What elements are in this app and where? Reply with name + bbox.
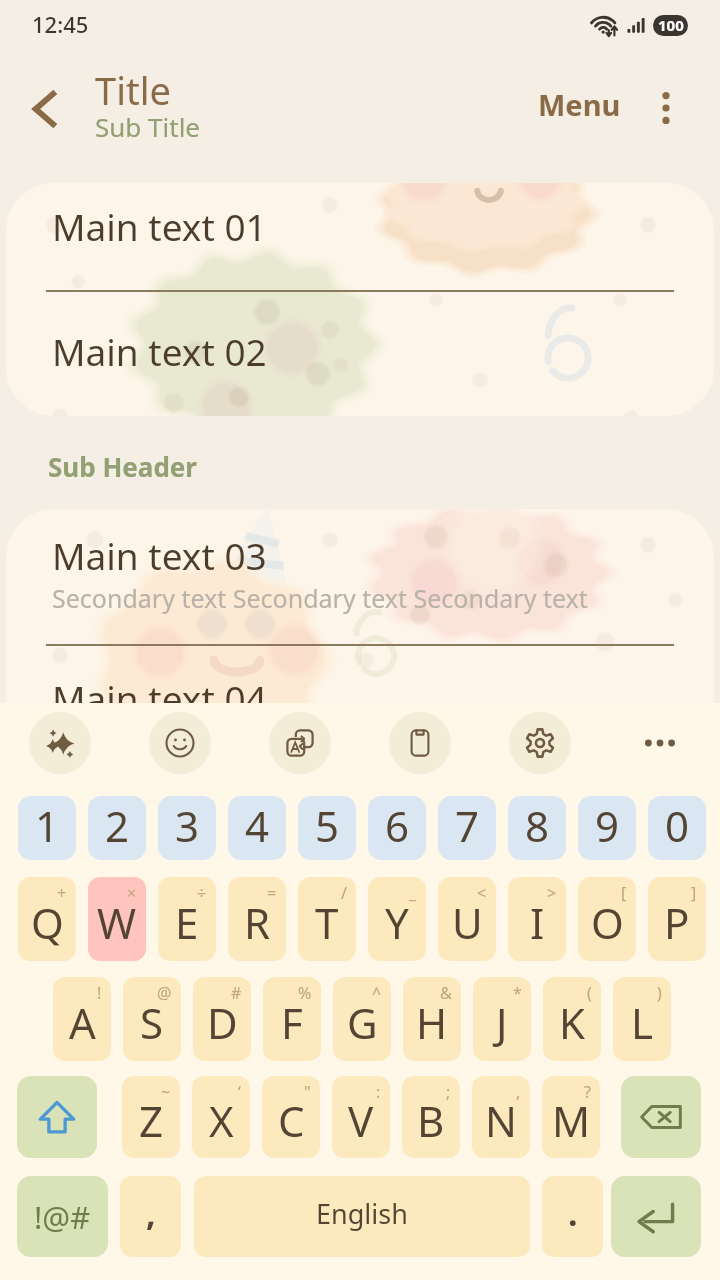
staticText: ( — [587, 982, 592, 1004]
button[interactable]: E — [158, 877, 216, 961]
staticText: Menu — [538, 85, 621, 124]
staticText: 4 — [245, 797, 270, 854]
button[interactable]: . — [542, 1176, 603, 1257]
button[interactable]: 4 — [228, 796, 286, 860]
staticText: English — [316, 1195, 408, 1232]
button[interactable]: Z — [122, 1076, 180, 1158]
staticText: E — [175, 894, 199, 951]
button[interactable]: S — [123, 977, 181, 1061]
button[interactable]: 2 — [88, 796, 146, 860]
staticText: Title — [95, 64, 171, 116]
staticText: [ — [621, 882, 627, 904]
staticText: ^ — [372, 982, 382, 1004]
button[interactable]: Translate — [269, 712, 331, 774]
staticText: 100 — [658, 15, 684, 35]
button[interactable]: Settings — [509, 712, 571, 774]
button[interactable]: D — [193, 977, 251, 1061]
button[interactable]: AI suggestions — [29, 712, 91, 774]
button[interactable]: 1 — [18, 796, 76, 860]
button[interactable]: More options — [638, 80, 694, 136]
staticText: T — [315, 894, 339, 951]
staticText: C — [278, 1092, 305, 1149]
staticText: 7 — [455, 797, 480, 854]
staticText: Main text 01 — [52, 201, 267, 251]
button[interactable]: 0 — [648, 796, 706, 860]
button[interactable]: H — [403, 977, 461, 1061]
button[interactable]: 9 — [578, 796, 636, 860]
button[interactable]: Main text 03 — [6, 509, 714, 644]
staticText: & — [440, 982, 452, 1004]
button[interactable]: M — [542, 1076, 600, 1158]
staticText: A — [69, 994, 96, 1051]
button[interactable]: O — [578, 877, 636, 961]
button[interactable]: W — [88, 877, 146, 961]
button[interactable]: Menu — [522, 73, 637, 136]
staticText: 6 — [385, 797, 410, 854]
staticText: # — [231, 982, 242, 1004]
button[interactable]: R — [228, 877, 286, 961]
button[interactable]: Backspace — [621, 1076, 701, 1158]
button[interactable]: P — [648, 877, 706, 961]
button[interactable]: Enter — [611, 1176, 701, 1257]
button[interactable]: 3 — [158, 796, 216, 860]
staticText: G — [347, 994, 378, 1051]
button[interactable]: T — [298, 877, 356, 961]
button[interactable]: 8 — [508, 796, 566, 860]
button[interactable]: Y — [368, 877, 426, 961]
button[interactable]: B — [402, 1076, 460, 1158]
staticText: Q — [31, 894, 64, 951]
button[interactable]: English — [194, 1176, 530, 1257]
button[interactable]: J — [473, 977, 531, 1061]
button[interactable]: Shift — [17, 1076, 97, 1158]
button[interactable]: 6 — [368, 796, 426, 860]
button[interactable]: More — [629, 712, 691, 774]
staticText: Y — [385, 894, 409, 951]
button[interactable]: U — [438, 877, 496, 961]
button[interactable]: F — [263, 977, 321, 1061]
staticText: R — [244, 894, 271, 951]
staticText: O — [591, 894, 624, 951]
button[interactable]: V — [332, 1076, 390, 1158]
staticText: F — [281, 994, 303, 1051]
staticText: ÷ — [197, 882, 207, 904]
staticText: / — [341, 882, 347, 904]
button[interactable]: N — [472, 1076, 530, 1158]
staticText: N — [485, 1092, 517, 1149]
staticText: : — [376, 1081, 381, 1103]
staticText: _ — [409, 882, 417, 904]
button[interactable]: A — [53, 977, 111, 1061]
staticText: 0 — [665, 797, 690, 854]
button[interactable]: X — [192, 1076, 250, 1158]
staticText: 2 — [105, 797, 130, 854]
button[interactable]: 5 — [298, 796, 356, 860]
button[interactable]: Main text 02 — [6, 292, 714, 416]
button[interactable]: I — [508, 877, 566, 961]
staticText: I — [530, 894, 545, 951]
button[interactable]: Clipboard — [389, 712, 451, 774]
button[interactable]: Emoji — [149, 712, 211, 774]
staticText: ~ — [161, 1081, 171, 1103]
button[interactable]: !@# — [17, 1176, 108, 1257]
staticText: B — [417, 1092, 445, 1149]
button[interactable]: Main text 04 — [6, 646, 714, 749]
staticText: @ — [157, 982, 172, 1004]
staticText: ‘ — [238, 1081, 241, 1103]
button[interactable]: K — [543, 977, 601, 1061]
button[interactable]: Back — [16, 81, 72, 137]
staticText: ? — [584, 1081, 591, 1103]
button[interactable]: Main text 01 — [6, 183, 714, 290]
button[interactable]: Q — [18, 877, 76, 961]
staticText: * — [513, 982, 522, 1004]
staticText: ] — [691, 882, 697, 904]
staticText: L — [631, 994, 654, 1051]
button[interactable]: 7 — [438, 796, 496, 860]
staticText: V — [348, 1092, 374, 1149]
button[interactable]: L — [613, 977, 671, 1061]
staticText: Z — [139, 1092, 164, 1149]
button[interactable]: C — [262, 1076, 320, 1158]
staticText: , — [516, 1081, 521, 1103]
button[interactable]: , — [120, 1176, 181, 1257]
staticText: W — [97, 894, 137, 951]
staticText: S — [140, 994, 164, 1051]
button[interactable]: G — [333, 977, 391, 1061]
